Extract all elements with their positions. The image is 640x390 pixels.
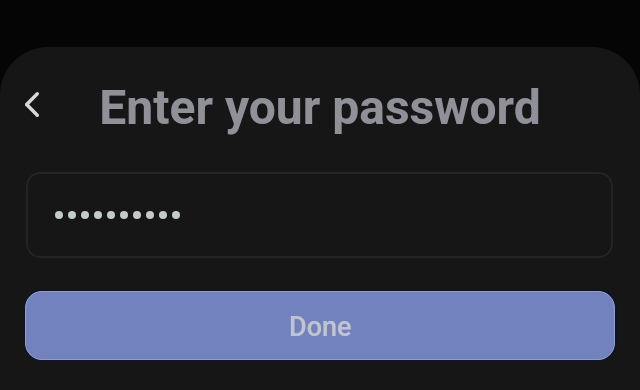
- staticText: Done: [289, 311, 352, 343]
- staticText: Enter your password: [0, 79, 640, 135]
- button[interactable]: Done: [25, 291, 615, 360]
- button[interactable]: Back: [7, 79, 57, 129]
- button[interactable]: [26, 172, 613, 258]
